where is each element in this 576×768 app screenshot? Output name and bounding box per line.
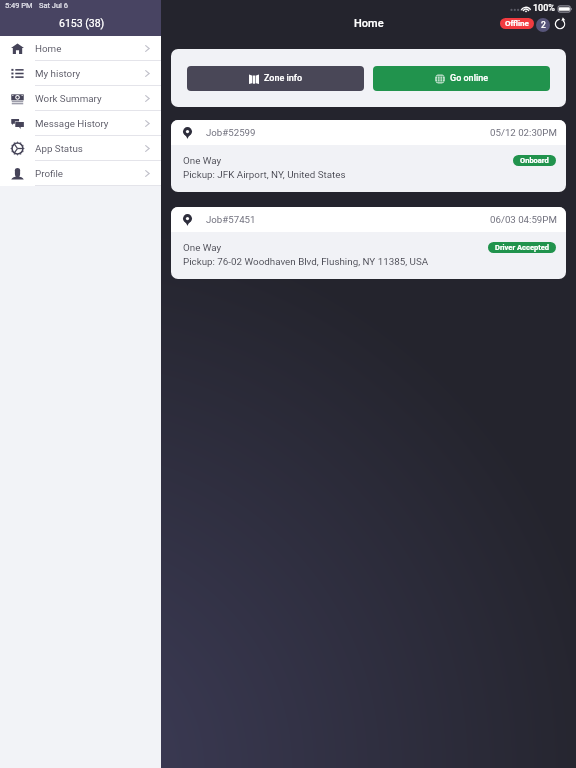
staticText: 05/12 02:30PM	[490, 127, 557, 138]
staticText: Pickup: 76-02 Woodhaven Blvd, Flushing, …	[183, 256, 429, 267]
button[interactable]: Zone info	[187, 66, 364, 91]
button[interactable]: My history	[0, 61, 161, 86]
staticText: Offline	[505, 19, 529, 28]
button[interactable]: Message History	[0, 111, 161, 136]
staticText: One Way	[183, 155, 222, 166]
button[interactable]: Home	[0, 36, 161, 61]
staticText: Zone info	[264, 73, 303, 84]
staticText: Pickup: JFK Airport, NY, United States	[183, 169, 346, 180]
staticText: Work Summary	[35, 93, 102, 104]
button[interactable]: App Status	[0, 136, 161, 161]
button[interactable]: Job#52599	[171, 120, 566, 192]
staticText: Sat Jul 6	[39, 1, 69, 10]
staticText: My history	[35, 68, 81, 79]
staticText: App Status	[35, 143, 83, 154]
staticText: 06/03 04:59PM	[490, 214, 557, 225]
button[interactable]: Profile	[0, 161, 161, 186]
staticText: Profile	[35, 168, 63, 179]
staticText: Home	[35, 43, 62, 54]
button[interactable]: 2	[536, 18, 550, 32]
staticText: Message History	[35, 118, 109, 129]
staticText: 6153 (38)	[59, 17, 105, 29]
staticText: One Way	[183, 242, 222, 253]
button[interactable]: Job#57451	[171, 207, 566, 279]
button[interactable]: Refresh	[552, 16, 568, 32]
staticText: Home	[354, 17, 384, 30]
staticText: 2	[541, 20, 546, 30]
staticText: 5:49 PM	[5, 1, 33, 10]
staticText: 100%	[533, 3, 555, 14]
staticText: Onboard	[520, 156, 549, 165]
staticText: Go online	[450, 73, 489, 84]
button[interactable]: Go online	[373, 66, 550, 91]
staticText: Job#52599	[206, 127, 256, 138]
button[interactable]: Offline	[500, 18, 534, 29]
staticText: Driver Accepted	[495, 243, 549, 252]
button[interactable]: Work Summary	[0, 86, 161, 111]
staticText: Job#57451	[206, 214, 256, 225]
